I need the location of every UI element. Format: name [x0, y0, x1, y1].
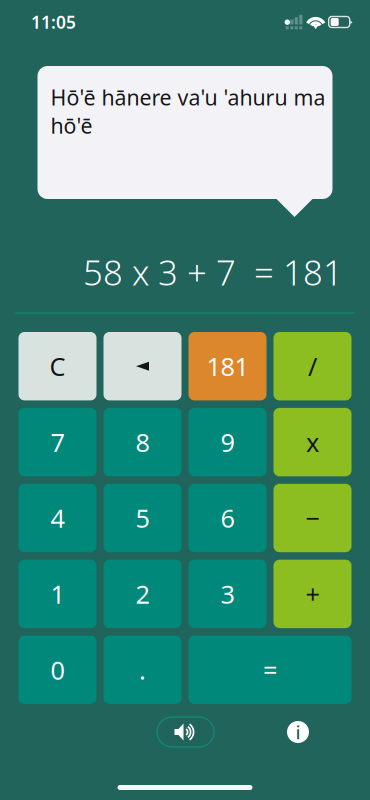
staticText: C [49, 349, 65, 383]
button[interactable]: Info [287, 721, 309, 743]
button[interactable]: + [273, 560, 351, 628]
staticText: 2 [135, 577, 149, 611]
staticText: x [306, 425, 319, 459]
staticText: 1 [50, 577, 64, 611]
staticText: i [295, 720, 300, 744]
staticText: 4 [50, 501, 64, 535]
button[interactable]: / [273, 332, 351, 400]
button[interactable]: − [273, 484, 351, 552]
button[interactable]: 9 [188, 408, 266, 476]
staticText: − [305, 501, 319, 535]
staticText: 6 [220, 501, 234, 535]
staticText: 7 [50, 425, 64, 459]
staticText: = [263, 653, 277, 687]
staticText: + [305, 577, 319, 611]
button[interactable]: 2 [103, 560, 181, 628]
button[interactable]: 6 [188, 484, 266, 552]
button[interactable]: 4 [18, 484, 96, 552]
button[interactable]: 181 [188, 332, 266, 400]
staticText: . [139, 653, 146, 687]
button[interactable]: 5 [103, 484, 181, 552]
staticText: 8 [135, 425, 149, 459]
button[interactable]: = [188, 636, 351, 704]
button[interactable]: 1 [18, 560, 96, 628]
staticText: 9 [220, 425, 234, 459]
staticText: 11:05 [31, 10, 76, 33]
button[interactable]: 0 [18, 636, 96, 704]
staticText: 5 [135, 501, 149, 535]
button[interactable]: C [18, 332, 96, 400]
button[interactable]: 3 [188, 560, 266, 628]
staticText: 3 [220, 577, 234, 611]
staticText: Hō'ē hānere va'u 'ahuru ma hō'ē [50, 83, 325, 140]
button[interactable]: x [273, 408, 351, 476]
staticText: 0 [50, 653, 64, 687]
button[interactable]: Backspace [103, 332, 181, 400]
button[interactable]: . [103, 636, 181, 704]
button[interactable]: 8 [103, 408, 181, 476]
staticText: / [308, 349, 317, 383]
staticText: 58 x 3 + 7 = 181 [83, 249, 343, 295]
staticText: 181 [206, 349, 248, 383]
button[interactable]: 7 [18, 408, 96, 476]
button[interactable]: Speak [157, 717, 214, 747]
